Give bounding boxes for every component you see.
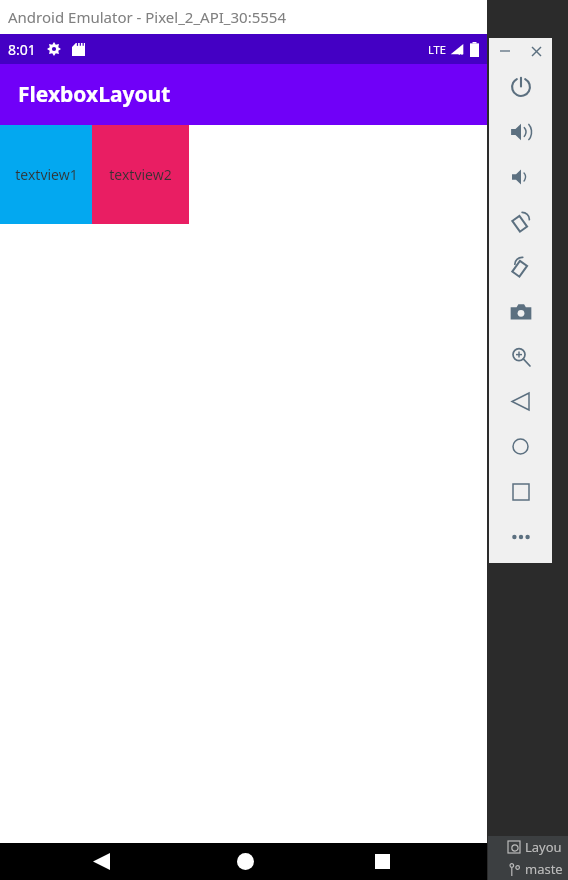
button[interactable]: Minimize xyxy=(489,38,520,64)
button[interactable]: Home xyxy=(489,424,552,469)
button[interactable]: Power xyxy=(489,64,552,109)
button[interactable]: maste xyxy=(488,858,568,880)
staticText: 8:01 xyxy=(8,40,36,59)
button[interactable]: textview2 xyxy=(92,125,189,224)
staticText: textview1 xyxy=(15,165,78,184)
button[interactable]: textview1 xyxy=(0,125,92,224)
button[interactable]: More xyxy=(489,514,552,559)
staticText: FlexboxLayout xyxy=(18,80,171,109)
button[interactable]: Zoom xyxy=(489,334,552,379)
button[interactable]: Recent apps xyxy=(322,843,442,880)
staticText: Layou xyxy=(525,838,562,856)
button[interactable]: Close xyxy=(520,38,552,64)
staticText: Android Emulator - Pixel_2_API_30:5554 xyxy=(8,7,286,27)
button[interactable]: Overview xyxy=(489,469,552,514)
button[interactable]: Home xyxy=(185,843,305,880)
button[interactable]: Back xyxy=(41,843,161,880)
staticText: textview2 xyxy=(109,165,172,184)
button[interactable]: Volume up xyxy=(489,109,552,154)
button[interactable]: Back xyxy=(489,379,552,424)
staticText: maste xyxy=(525,860,563,878)
button[interactable]: Rotate right xyxy=(489,244,552,289)
staticText: LTE xyxy=(428,42,446,57)
button[interactable]: Layou xyxy=(488,836,568,858)
button[interactable]: Rotate left xyxy=(489,199,552,244)
button[interactable]: Take screenshot xyxy=(489,289,552,334)
button[interactable]: Volume down xyxy=(489,154,552,199)
